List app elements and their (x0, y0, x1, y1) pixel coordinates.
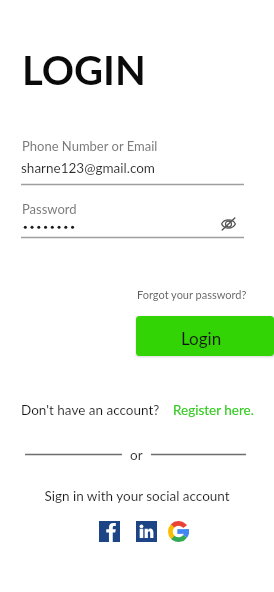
staticText: or (130, 447, 143, 463)
staticText: Phone Number or Email (22, 138, 158, 154)
staticText: Don't have an account? (21, 402, 160, 418)
button[interactable]: Sign in with LinkedIn (136, 521, 157, 542)
button[interactable]: Sign in with Google (168, 521, 189, 542)
staticText: LOGIN (22, 46, 146, 94)
button[interactable]: Toggle password visibility (217, 213, 239, 235)
staticText: Forgot your password? (137, 288, 247, 301)
button[interactable]: Forgot your password? (137, 288, 247, 301)
button[interactable]: Login (136, 316, 274, 356)
staticText: Sign in with your social account (0, 488, 274, 504)
staticText: sharne123@gmail.com (21, 160, 155, 176)
button[interactable]: Sign in with Facebook (99, 521, 120, 542)
button[interactable]: Register here. (173, 402, 254, 418)
staticText: Register here. (173, 402, 254, 418)
staticText: Login (181, 328, 222, 348)
staticText: Password (22, 201, 77, 217)
